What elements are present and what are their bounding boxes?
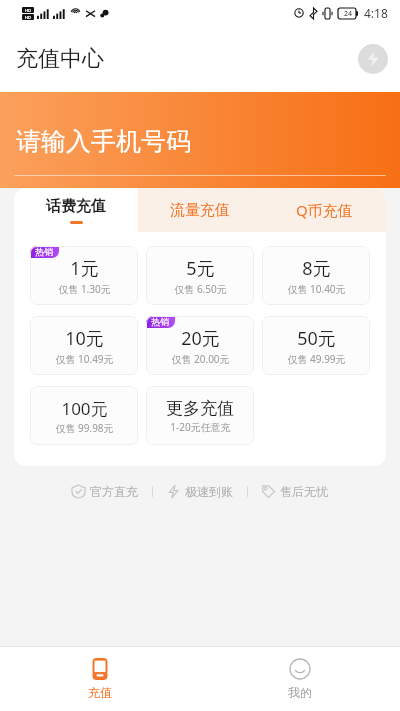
staticText: 1元 <box>70 256 99 281</box>
staticText: 热销 <box>35 246 53 257</box>
button[interactable]: 50元 <box>262 316 370 375</box>
staticText: 10元 <box>65 326 104 351</box>
staticText: 仅售 99.98元 <box>55 421 114 435</box>
staticText: 4:18 <box>364 5 388 21</box>
button[interactable]: 更多充值 <box>146 386 254 445</box>
button[interactable]: 充值 <box>0 647 200 711</box>
staticText: 仅售 1.30元 <box>58 282 111 296</box>
button[interactable]: 话费充值 <box>14 188 138 232</box>
button[interactable]: 10元 <box>30 316 138 375</box>
staticText: 热销 <box>151 316 169 327</box>
staticText: 100元 <box>61 397 108 420</box>
staticText: 50元 <box>297 326 336 351</box>
button[interactable]: 流量充值 <box>138 188 262 232</box>
staticText: 5元 <box>186 256 215 281</box>
staticText: 售后无忧 <box>280 484 328 499</box>
button[interactable]: 20元 <box>146 316 254 375</box>
button[interactable]: 8元 <box>262 246 370 305</box>
staticText: 仅售 10.49元 <box>55 352 114 366</box>
staticText: 仅售 49.99元 <box>287 352 346 366</box>
staticText: 请输入手机号码 <box>16 126 191 157</box>
button[interactable]: Q币充值 <box>262 188 386 232</box>
staticText: 充值 <box>88 685 112 700</box>
button[interactable]: 1元 <box>30 246 138 305</box>
staticText: HD <box>25 15 31 20</box>
staticText: HD <box>25 8 31 13</box>
staticText: 我的 <box>288 685 312 700</box>
staticText: 1-20元任意充 <box>170 420 231 434</box>
staticText: 仅售 20.00元 <box>171 352 230 366</box>
staticText: Q币充值 <box>296 200 353 220</box>
button[interactable]: 100元 <box>30 386 138 445</box>
staticText: 更多充值 <box>166 398 234 419</box>
staticText: 20元 <box>181 326 220 351</box>
staticText: 仅售 6.50元 <box>174 282 227 296</box>
button[interactable]: 我的 <box>200 647 400 711</box>
staticText: 24 <box>344 9 353 19</box>
staticText: 流量充值 <box>170 201 230 220</box>
staticText: 仅售 10.40元 <box>287 282 346 296</box>
staticText: 官方直充 <box>90 484 138 499</box>
staticText: 充值中心 <box>16 45 104 73</box>
staticText: 8元 <box>302 256 331 281</box>
staticText: 极速到账 <box>185 484 233 499</box>
staticText: 话费充值 <box>46 197 106 216</box>
button[interactable]: 5元 <box>146 246 254 305</box>
button[interactable]: Profile <box>358 44 388 74</box>
